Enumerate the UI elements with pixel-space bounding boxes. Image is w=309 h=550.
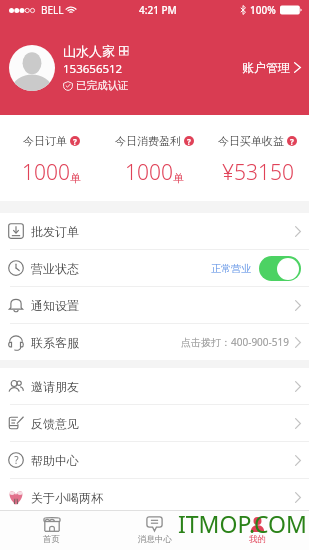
staticText: 营业状态 — [31, 261, 79, 276]
button[interactable]: 关于小喝两杯 — [0, 479, 309, 515]
staticText: 单 — [70, 171, 81, 185]
staticText: 4:21 PM — [139, 3, 177, 17]
staticText: 通知设置 — [31, 298, 79, 313]
staticText: 帮助中心 — [31, 453, 79, 468]
staticText: ? — [187, 136, 191, 146]
button[interactable]: 今日买单收益 — [206, 115, 309, 187]
staticText: 正常营业 — [211, 262, 251, 275]
button[interactable]: 消息中心 — [103, 511, 206, 550]
staticText: 今日订单 — [23, 134, 67, 148]
button[interactable]: ? — [0, 442, 309, 478]
button[interactable]: 反馈意见 — [0, 405, 309, 441]
button[interactable]: 批发订单 — [0, 213, 309, 249]
staticText: .COM — [249, 508, 307, 539]
staticText: 关于小喝两杯 — [31, 490, 103, 505]
button[interactable]: 邀请朋友 — [0, 368, 309, 404]
staticText: 账户管理 — [242, 60, 290, 75]
staticText: 今日消费盈利 — [115, 134, 181, 148]
staticText: 邀请朋友 — [31, 379, 79, 394]
staticText: 今日买单收益 — [218, 134, 284, 148]
staticText: 1000 — [22, 158, 70, 187]
staticText: 批发订单 — [31, 224, 79, 239]
staticText: BELL — [41, 3, 64, 17]
button[interactable]: 今日消费盈利 — [103, 115, 206, 187]
staticText: 反馈意见 — [31, 416, 79, 431]
staticText: 我的 — [249, 534, 266, 545]
staticText: ITMOP — [178, 508, 252, 539]
staticText: ? — [73, 136, 77, 146]
staticText: 联系客服 — [31, 335, 79, 350]
button[interactable]: 通知设置 — [0, 287, 309, 323]
staticText: 100% — [250, 3, 276, 17]
button[interactable]: 首页 — [0, 511, 103, 550]
button[interactable]: 今日订单 — [0, 115, 103, 187]
button[interactable]: 营业状态 — [0, 250, 309, 286]
staticText: 1000 — [125, 158, 173, 187]
staticText: 已完成认证 — [76, 79, 129, 92]
staticText: 消息中心 — [138, 534, 172, 545]
staticText: 点击拨打：400-900-519 — [181, 335, 289, 349]
staticText: 153656512 — [63, 61, 123, 77]
button[interactable]: 账户管理 — [242, 52, 301, 83]
staticText: 单 — [173, 171, 184, 185]
staticText: ¥53150 — [222, 158, 294, 187]
button[interactable]: Business status toggle — [259, 256, 301, 281]
staticText: ? — [290, 136, 294, 146]
button[interactable]: 我的 — [206, 511, 309, 550]
staticText: ? — [14, 453, 19, 467]
staticText: 山水人家 — [63, 43, 115, 59]
button[interactable]: 联系客服 — [0, 324, 309, 360]
staticText: 首页 — [43, 534, 60, 545]
